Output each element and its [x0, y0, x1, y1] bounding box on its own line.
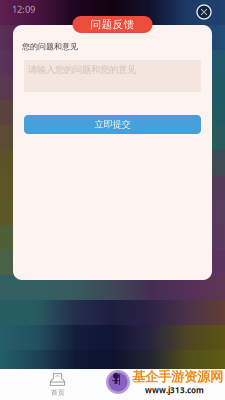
staticText: www.j313.com: [145, 385, 204, 395]
button[interactable]: Close: [192, 0, 216, 24]
staticText: 12:09: [12, 3, 35, 15]
staticText: 问题反馈: [90, 18, 134, 31]
button[interactable]: 首页: [30, 369, 86, 400]
staticText: 首页: [51, 388, 65, 397]
staticText: 您的问题和意见: [22, 42, 78, 51]
staticText: 请输入您的问题和您的意见: [28, 64, 136, 75]
staticText: 立即提交: [94, 119, 130, 130]
button[interactable]: 立即提交: [24, 115, 201, 134]
staticText: 基企手游资源网: [132, 368, 223, 385]
